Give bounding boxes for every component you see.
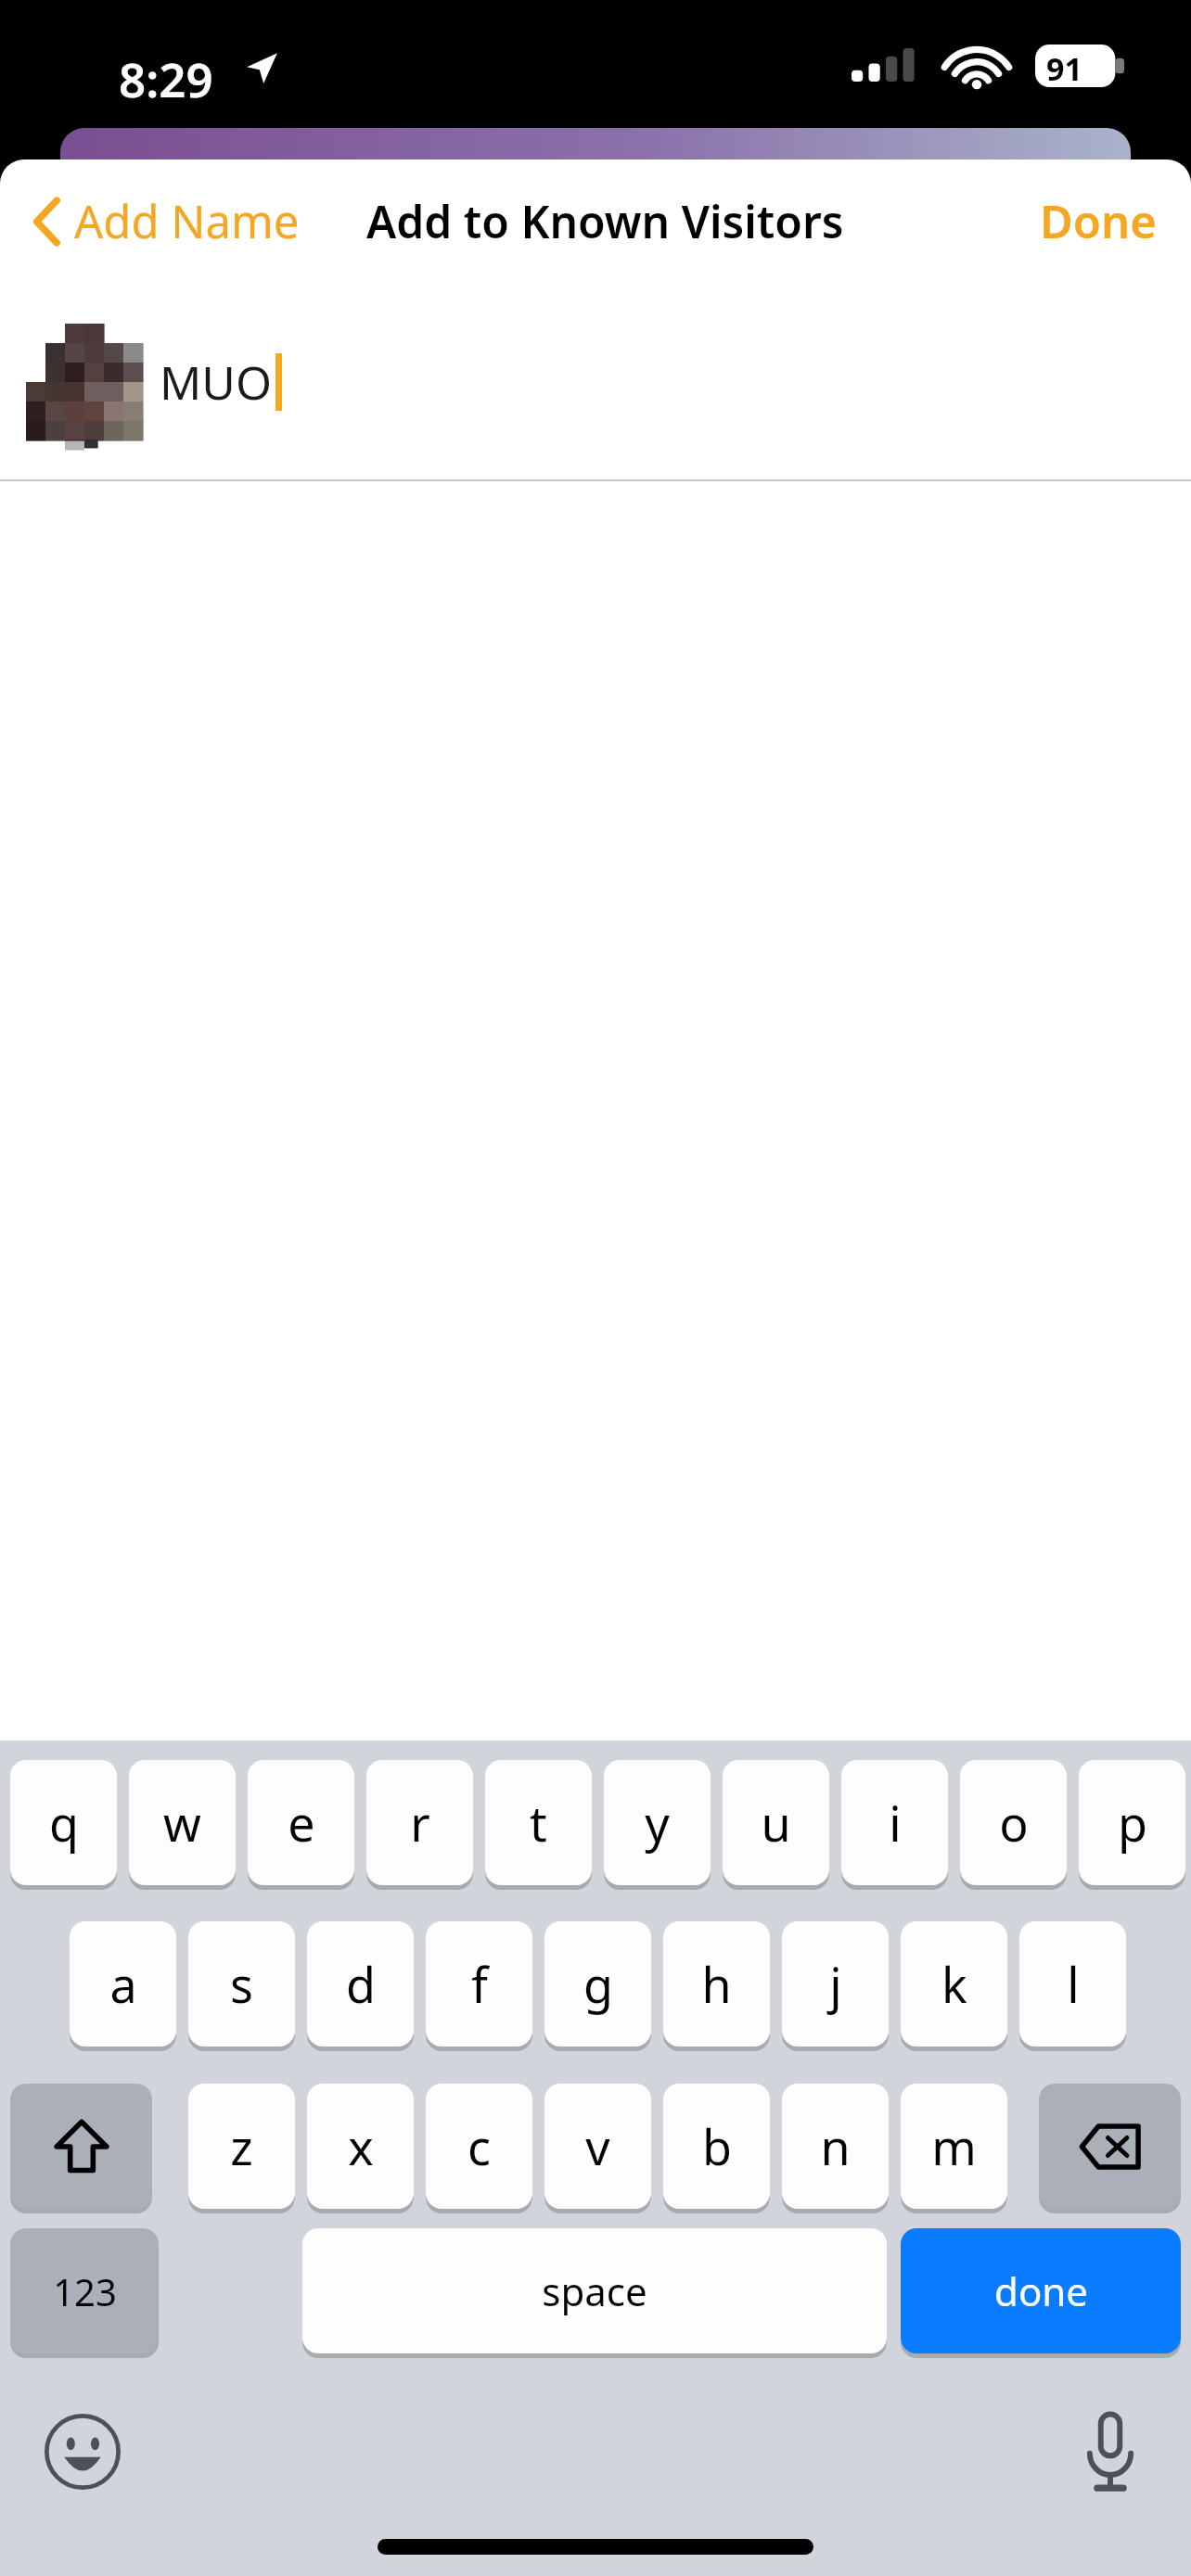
staticText: 8:29 [119, 46, 213, 110]
staticText: Add to Known Visitors [366, 191, 844, 251]
staticText: 123 [53, 2266, 117, 2316]
staticText: b [702, 2113, 732, 2179]
staticText: s [230, 1951, 253, 2017]
staticText: r [410, 1790, 430, 1855]
button[interactable]: Emoji keyboard [37, 2406, 128, 2497]
staticText: o [999, 1790, 1029, 1855]
button[interactable]: d [307, 1921, 414, 2047]
button[interactable]: Done [1031, 179, 1167, 263]
button[interactable]: Shift [10, 2084, 152, 2209]
button[interactable]: k [901, 1921, 1007, 2047]
staticText: 91 [1046, 47, 1082, 90]
staticText: a [109, 1951, 137, 2017]
staticText: y [645, 1790, 670, 1855]
staticText: n [820, 2113, 851, 2179]
button[interactable]: o [960, 1760, 1067, 1885]
button[interactable]: Backspace [1039, 2084, 1181, 2209]
button[interactable]: m [901, 2084, 1007, 2209]
staticText: q [49, 1790, 79, 1855]
button[interactable]: Dictation [1065, 2406, 1156, 2497]
button[interactable]: MUO [0, 283, 1191, 480]
staticText: j [829, 1951, 842, 2017]
staticText: space [542, 2264, 647, 2317]
staticText: x [348, 2113, 374, 2179]
button[interactable]: z [188, 2084, 295, 2209]
staticText: MUO [160, 351, 272, 414]
staticText: Done [1040, 190, 1158, 252]
button[interactable]: x [307, 2084, 414, 2209]
button[interactable]: q [10, 1760, 117, 1885]
staticText: p [1118, 1790, 1147, 1855]
staticText: m [931, 2113, 977, 2179]
staticText: v [585, 2113, 610, 2179]
staticText: f [471, 1951, 488, 2017]
staticText: u [761, 1790, 791, 1855]
staticText: e [288, 1790, 315, 1855]
button[interactable]: r [366, 1760, 473, 1885]
button[interactable]: 123 [10, 2228, 159, 2353]
staticText: k [941, 1951, 967, 2017]
staticText: h [701, 1951, 732, 2017]
button[interactable]: n [782, 2084, 889, 2209]
button[interactable]: j [782, 1921, 889, 2047]
button[interactable]: s [188, 1921, 295, 2047]
button[interactable]: l [1019, 1921, 1126, 2047]
button[interactable]: e [248, 1760, 354, 1885]
button[interactable]: b [663, 2084, 770, 2209]
button[interactable]: g [544, 1921, 651, 2047]
staticText: l [1067, 1951, 1080, 2017]
button[interactable]: h [663, 1921, 770, 2047]
button[interactable]: y [604, 1760, 711, 1885]
button[interactable]: a [70, 1921, 176, 2047]
button[interactable]: u [723, 1760, 829, 1885]
staticText: done [994, 2264, 1088, 2317]
button[interactable]: f [426, 1921, 532, 2047]
staticText: g [583, 1951, 613, 2017]
button[interactable]: p [1079, 1760, 1185, 1885]
button[interactable]: t [485, 1760, 592, 1885]
button[interactable]: c [426, 2084, 532, 2209]
button[interactable]: done [901, 2228, 1181, 2353]
staticText: i [889, 1790, 902, 1855]
button[interactable]: Add Name [24, 179, 309, 263]
button[interactable]: space [302, 2228, 887, 2353]
button[interactable]: i [841, 1760, 948, 1885]
staticText: d [346, 1951, 376, 2017]
staticText: z [230, 2113, 253, 2179]
staticText: c [467, 2113, 491, 2179]
button[interactable]: w [129, 1760, 236, 1885]
staticText: Add Name [74, 190, 300, 252]
staticText: w [163, 1790, 201, 1855]
button[interactable]: v [544, 2084, 651, 2209]
staticText: t [530, 1790, 547, 1855]
